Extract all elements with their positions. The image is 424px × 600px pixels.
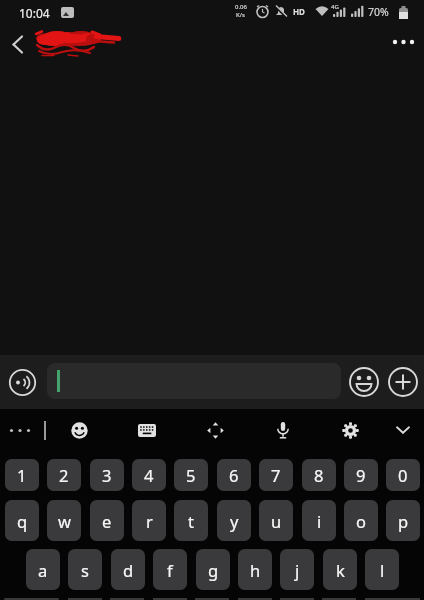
button[interactable] xyxy=(128,411,166,449)
staticText: 4 xyxy=(144,464,154,486)
button[interactable]: a xyxy=(26,549,60,590)
staticText: 8 xyxy=(314,464,324,486)
button[interactable] xyxy=(384,411,422,449)
button[interactable]: h xyxy=(238,549,272,590)
button[interactable]: s xyxy=(68,549,102,590)
button[interactable] xyxy=(264,411,302,449)
button[interactable]: j xyxy=(280,549,314,590)
staticText: 3 xyxy=(102,464,112,486)
button[interactable]: w xyxy=(47,500,81,541)
button[interactable]: 3 xyxy=(90,459,124,491)
staticText: 1 xyxy=(17,464,27,486)
staticText: u xyxy=(271,510,282,532)
button[interactable] xyxy=(331,411,369,449)
button[interactable]: t xyxy=(174,500,208,541)
button[interactable]: 9 xyxy=(344,459,378,491)
button[interactable]: i xyxy=(302,500,336,541)
staticText: r xyxy=(146,510,153,532)
button[interactable]: d xyxy=(111,549,145,590)
staticText: 10:04 xyxy=(19,5,50,21)
button[interactable] xyxy=(0,409,40,452)
button[interactable]: 6 xyxy=(217,459,251,491)
staticText: 0 xyxy=(398,464,408,486)
button[interactable]: g xyxy=(196,549,230,590)
staticText: k xyxy=(336,559,345,581)
staticText: t xyxy=(188,510,194,532)
button[interactable] xyxy=(47,363,341,399)
button[interactable] xyxy=(60,411,98,449)
staticText: h xyxy=(250,559,261,581)
staticText: j xyxy=(295,559,300,581)
staticText: 5 xyxy=(186,464,196,486)
staticText: 6 xyxy=(229,464,239,486)
button[interactable]: u xyxy=(259,500,293,541)
staticText: o xyxy=(356,510,366,532)
button[interactable]: y xyxy=(217,500,251,541)
button[interactable]: 4 xyxy=(132,459,166,491)
staticText: K/s xyxy=(236,11,245,19)
staticText: i xyxy=(317,510,322,532)
button[interactable]: l xyxy=(365,549,399,590)
button[interactable]: p xyxy=(386,500,420,541)
staticText: y xyxy=(230,510,239,532)
staticText: 4G xyxy=(331,3,339,11)
staticText: f xyxy=(167,559,173,581)
button[interactable]: e xyxy=(90,500,124,541)
button[interactable] xyxy=(385,364,421,400)
staticText: e xyxy=(102,510,112,532)
button[interactable] xyxy=(0,26,40,62)
button[interactable]: 1 xyxy=(5,459,39,491)
staticText: HD xyxy=(293,6,305,17)
button[interactable]: o xyxy=(344,500,378,541)
staticText: 7 xyxy=(271,464,281,486)
button[interactable]: 5 xyxy=(174,459,208,491)
button[interactable] xyxy=(196,411,234,449)
button[interactable]: k xyxy=(323,549,357,590)
staticText: d xyxy=(123,559,134,581)
button[interactable] xyxy=(346,364,382,400)
button[interactable]: 7 xyxy=(259,459,293,491)
staticText: 9 xyxy=(356,464,366,486)
staticText: w xyxy=(58,510,71,532)
staticText: p xyxy=(398,510,409,532)
staticText: g xyxy=(208,559,219,581)
staticText: s xyxy=(81,559,89,581)
button[interactable]: 2 xyxy=(47,459,81,491)
staticText: 70% xyxy=(368,5,389,19)
staticText: q xyxy=(17,510,28,532)
button[interactable]: f xyxy=(153,549,187,590)
button[interactable]: 0 xyxy=(386,459,420,491)
staticText: 2 xyxy=(59,464,69,486)
staticText: l xyxy=(380,559,385,581)
staticText: a xyxy=(38,559,48,581)
button[interactable]: 8 xyxy=(302,459,336,491)
button[interactable]: q xyxy=(5,500,39,541)
button[interactable] xyxy=(4,364,40,400)
button[interactable]: r xyxy=(132,500,166,541)
staticText: 0.06 xyxy=(235,3,247,11)
button[interactable] xyxy=(380,26,424,62)
